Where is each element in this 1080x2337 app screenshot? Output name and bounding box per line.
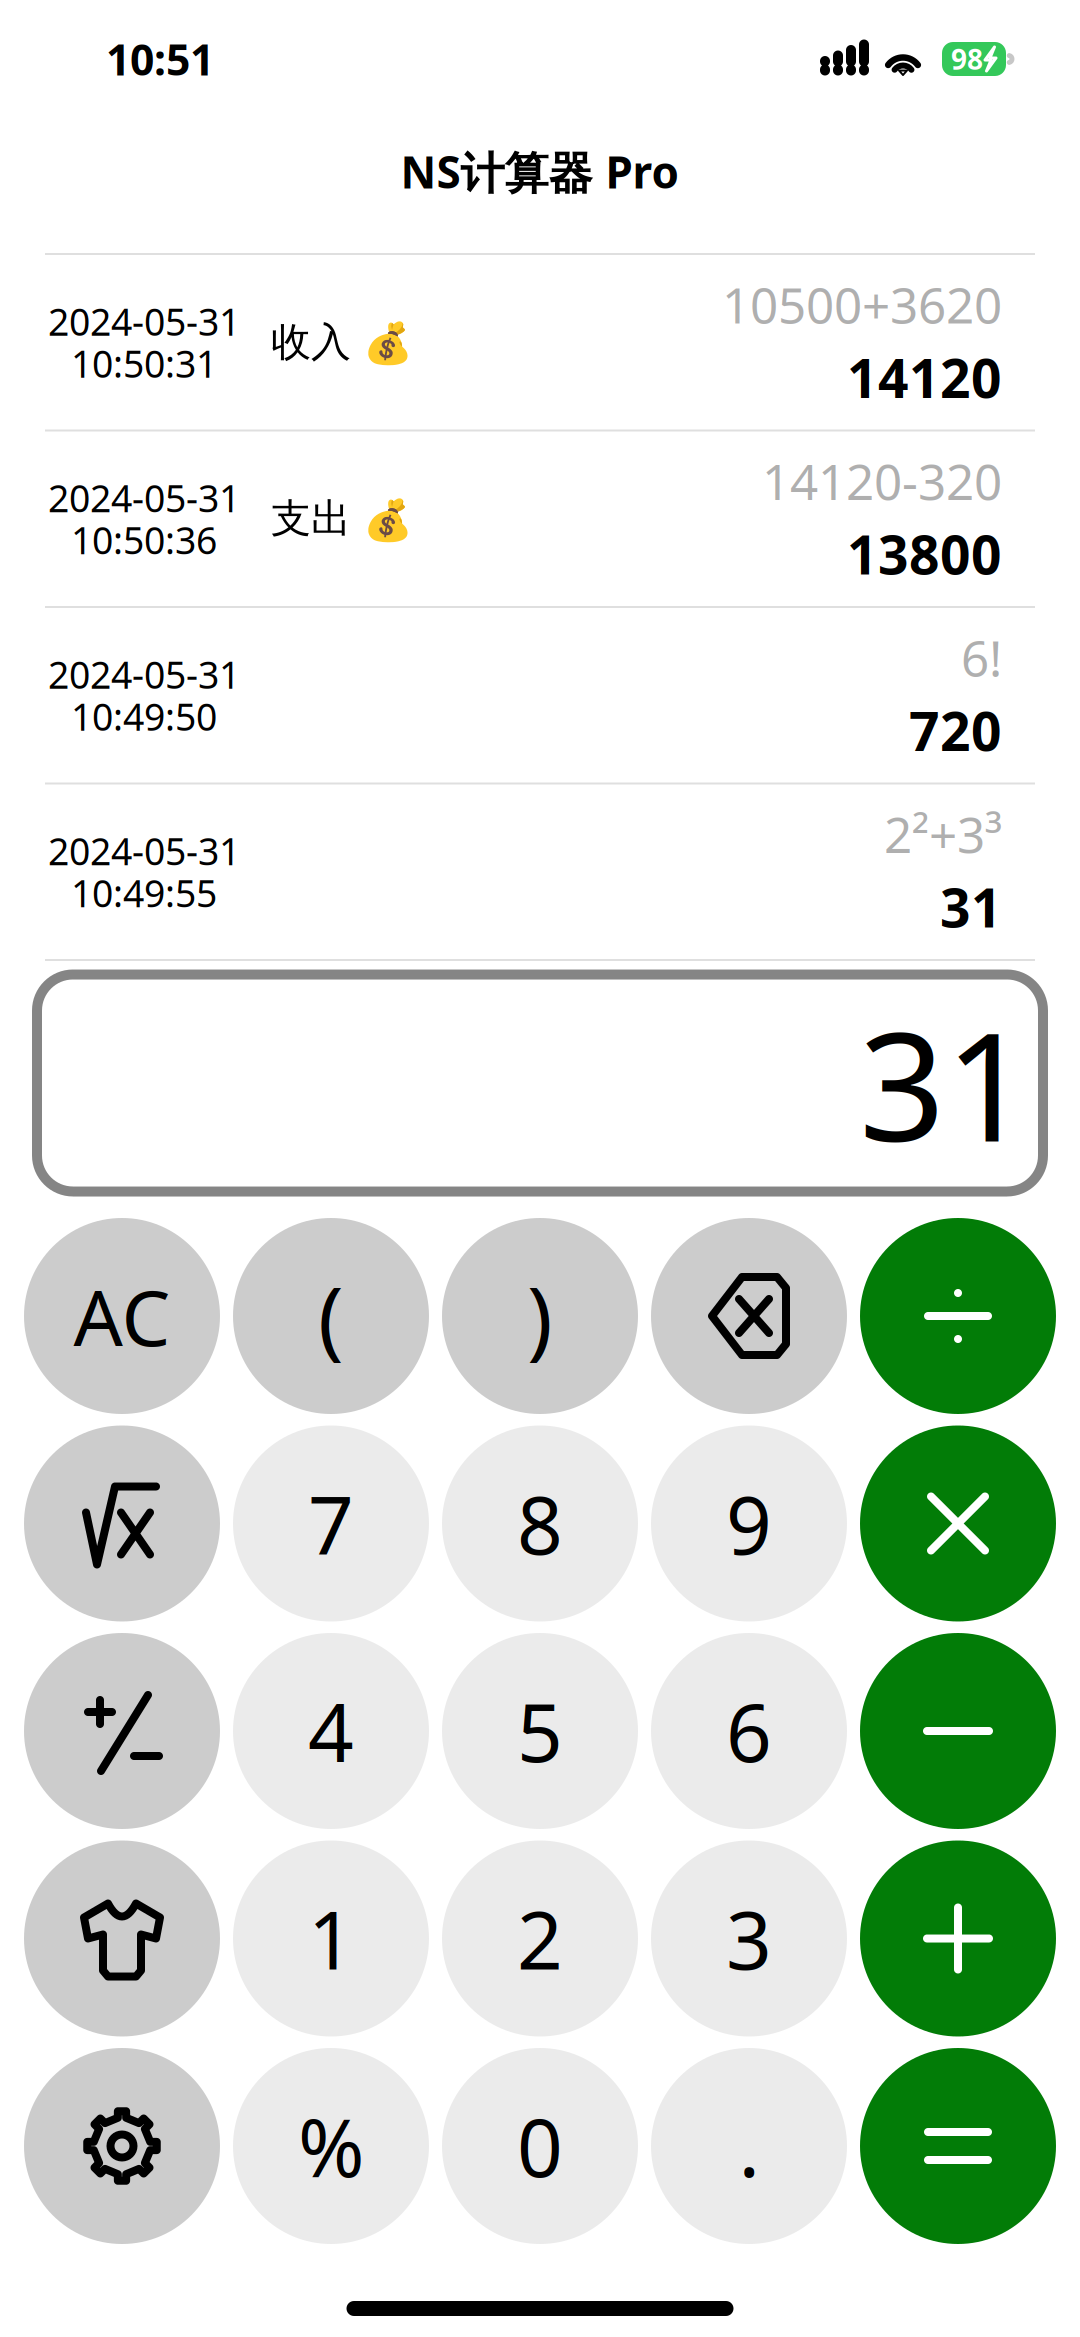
staticText: 31 [940,870,1002,943]
staticText: 9 [726,1469,772,1578]
staticText: 14120 [847,341,1002,414]
button[interactable]: Clothing [24,1840,220,2036]
staticText: 13800 [847,517,1002,590]
staticText: 支出 💰 [271,494,413,544]
staticText: 4 [308,1676,354,1785]
staticText: AC [73,1263,170,1369]
staticText: 2024-05-31 [48,649,240,700]
button[interactable]: 6 [651,1633,847,1829]
staticText: 10:49:50 [71,691,217,742]
button[interactable]: Square root [24,1425,220,1621]
button[interactable]: 7 [233,1425,429,1621]
button[interactable]: ) [442,1218,638,1414]
staticText: 31 [859,980,1031,1186]
staticText: 2024-05-31 [48,825,240,876]
staticText: % [298,2091,364,2200]
button[interactable]: Plus or minus [24,1633,220,1829]
button[interactable]: Equals [860,2048,1056,2244]
button[interactable]: Multiply [860,1425,1056,1621]
staticText: 98 [951,40,983,78]
button[interactable]: Settings [24,2048,220,2244]
button[interactable]: Delete [651,1218,847,1414]
button[interactable]: 2024-05-31 [0,255,1080,431]
button[interactable]: . [651,2048,847,2244]
button[interactable]: % [233,2048,429,2244]
staticText: 2²+3³ [884,800,1002,867]
staticText: 14120-320 [762,447,1002,514]
staticText: ) [527,1258,553,1374]
staticText: 7 [308,1469,354,1578]
staticText: 10:49:55 [71,867,217,918]
button[interactable]: 2024-05-31 [0,431,1080,608]
button[interactable]: Subtract [860,1633,1056,1829]
button[interactable]: 2024-05-31 [0,784,1080,961]
staticText: 2024-05-31 [48,472,240,523]
button[interactable]: 3 [651,1840,847,2036]
staticText: 0 [517,2091,563,2200]
staticText: 720 [909,694,1002,767]
staticText: 10:51 [106,30,214,88]
button[interactable]: ( [233,1218,429,1414]
button[interactable]: Divide [860,1218,1056,1414]
staticText: 10:50:36 [71,514,217,565]
staticText: 1 [308,1884,354,1993]
button[interactable]: 2 [442,1840,638,2036]
button[interactable]: 0 [442,2048,638,2244]
button[interactable]: 4 [233,1633,429,1829]
staticText: 2 [517,1884,563,1993]
staticText: 2024-05-31 [48,296,240,347]
staticText: NS计算器 Pro [400,141,679,202]
button[interactable]: 8 [442,1425,638,1621]
staticText: 8 [517,1469,563,1578]
button[interactable]: 9 [651,1425,847,1621]
staticText: 10500+3620 [722,271,1002,338]
button[interactable]: 5 [442,1633,638,1829]
staticText: 5 [517,1676,563,1785]
staticText: ( [318,1258,344,1374]
button[interactable]: 1 [233,1840,429,2036]
staticText: 6 [726,1676,772,1785]
staticText: 6! [961,624,1002,691]
button[interactable]: 2024-05-31 [0,608,1080,784]
staticText: 收入 💰 [271,317,413,367]
button[interactable]: AC [24,1218,220,1414]
staticText: . [738,2091,759,2200]
button[interactable]: Add [860,1840,1056,2036]
staticText: 10:50:31 [71,338,217,389]
staticText: 3 [726,1884,772,1993]
